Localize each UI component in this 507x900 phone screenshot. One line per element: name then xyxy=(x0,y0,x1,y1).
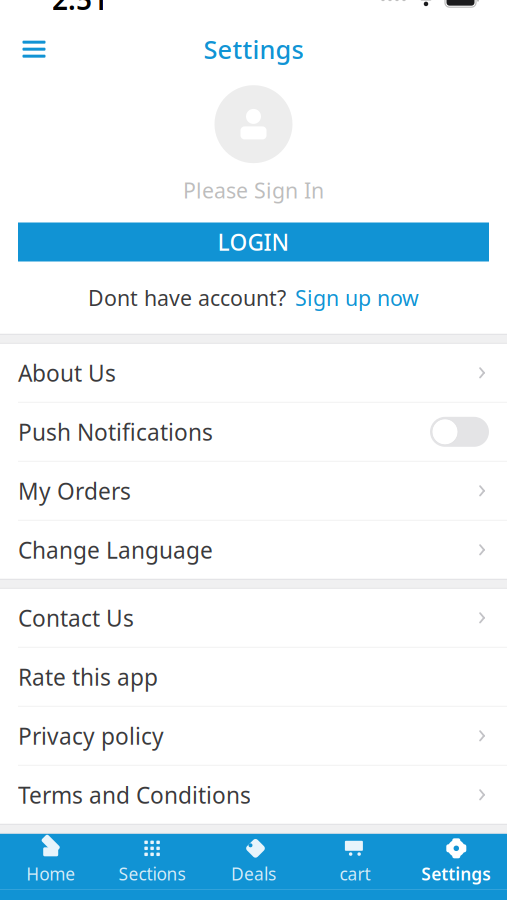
button[interactable]: Deals xyxy=(203,834,304,890)
button[interactable]: Settings xyxy=(406,834,507,890)
staticText: About Us xyxy=(18,358,116,388)
button[interactable]: cart xyxy=(304,834,406,890)
staticText: Sections xyxy=(119,862,186,885)
button[interactable]: Privacy policy xyxy=(0,707,507,765)
staticText: Deals xyxy=(231,862,276,885)
button[interactable]: About Us xyxy=(0,344,507,402)
staticText: Contact Us xyxy=(18,603,134,633)
button[interactable]: Home xyxy=(0,834,101,890)
button[interactable]: Contact Us xyxy=(0,589,507,647)
staticText: Change Language xyxy=(18,535,213,565)
staticText: Sign up now xyxy=(295,283,419,312)
button[interactable]: Sections xyxy=(101,834,203,890)
staticText: cart xyxy=(339,862,370,885)
staticText: My Orders xyxy=(18,476,131,506)
staticText: Terms and Conditions xyxy=(18,780,251,810)
button[interactable]: Change Language xyxy=(0,521,507,579)
staticText: Please Sign In xyxy=(183,176,324,204)
button[interactable]: My Orders xyxy=(0,462,507,520)
button[interactable]: Menu xyxy=(11,27,57,71)
button[interactable]: Rate this app xyxy=(0,648,507,706)
staticText: Rate this app xyxy=(18,662,158,692)
staticText: Privacy policy xyxy=(18,721,164,751)
staticText: 2:51 xyxy=(52,0,108,18)
staticText: LOGIN xyxy=(217,227,289,257)
staticText: Dont have account? xyxy=(88,283,286,312)
staticText: Settings xyxy=(421,862,491,885)
button[interactable]: Sign up now xyxy=(286,279,419,316)
staticText: Home xyxy=(26,862,75,885)
button[interactable]: Push Notifications toggle xyxy=(430,417,489,447)
staticText: Push Notifications xyxy=(18,417,213,447)
button[interactable]: LOGIN xyxy=(18,222,489,261)
button[interactable]: Terms and Conditions xyxy=(0,766,507,824)
staticText: Settings xyxy=(203,32,303,66)
